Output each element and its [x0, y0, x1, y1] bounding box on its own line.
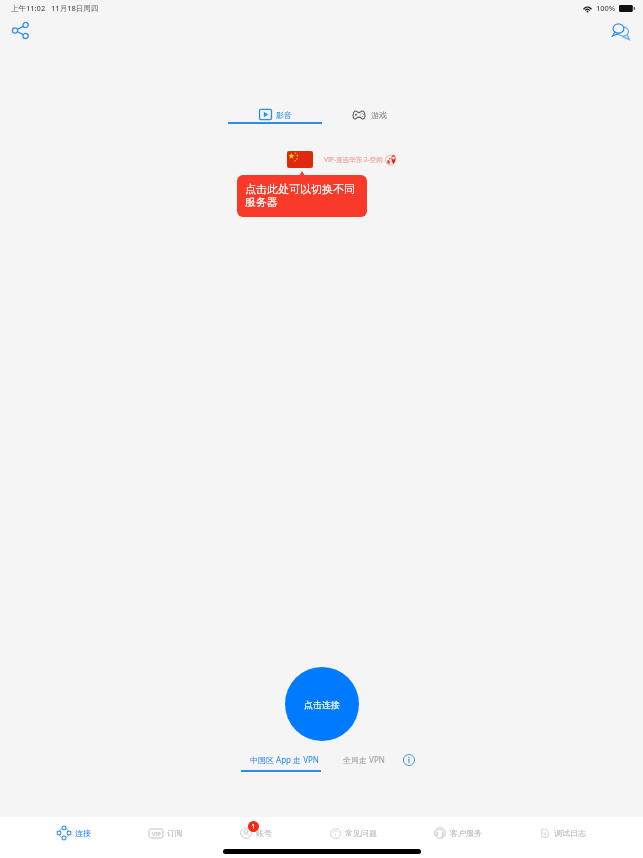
- staticText: 点击连接: [304, 699, 340, 710]
- button[interactable]: 1: [240, 817, 272, 849]
- staticText: 点击此处可以切换不同服务器: [245, 182, 359, 210]
- staticText: 账号: [256, 828, 272, 838]
- staticText: VIP: [152, 830, 161, 837]
- button[interactable]: 调试日志: [540, 817, 586, 849]
- button[interactable]: VIP: [149, 817, 183, 849]
- staticText: 影音: [276, 110, 292, 120]
- button[interactable]: 连接: [57, 817, 91, 849]
- staticText: 1: [251, 822, 256, 832]
- button[interactable]: 中国区 App 走 VPN: [250, 754, 319, 765]
- staticText: 订阅: [167, 828, 183, 838]
- staticText: VIP-直连华东 2-空闲: [324, 155, 383, 164]
- button[interactable]: 点击连接: [285, 667, 359, 741]
- button[interactable]: Messages: [606, 16, 635, 45]
- button[interactable]: 客户服务: [434, 817, 482, 849]
- staticText: 游戏: [371, 110, 387, 120]
- button[interactable]: 全局走 VPN: [343, 754, 385, 765]
- button[interactable]: Info: [400, 751, 418, 769]
- staticText: 常见问题: [345, 828, 377, 838]
- staticText: 上午11:02 11月18日周四: [11, 3, 99, 13]
- button[interactable]: 点击此处可以切换不同服务器: [237, 175, 367, 217]
- staticText: 调试日志: [554, 828, 586, 838]
- button[interactable]: VIP-直连华东 2-空闲: [287, 151, 397, 168]
- button[interactable]: Share: [6, 16, 35, 45]
- button[interactable]: 影音: [228, 109, 322, 124]
- staticText: 客户服务: [450, 828, 482, 838]
- staticText: 连接: [75, 828, 91, 838]
- button[interactable]: 常见问题: [330, 817, 377, 849]
- staticText: 100%: [596, 3, 616, 13]
- button[interactable]: 游戏: [322, 109, 416, 124]
